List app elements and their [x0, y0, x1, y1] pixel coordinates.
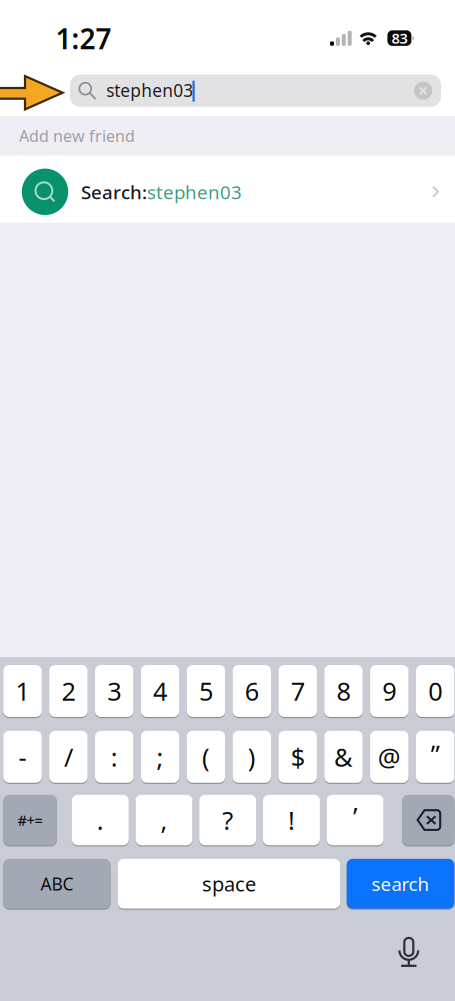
button[interactable]: .: [72, 795, 129, 845]
button[interactable]: ?: [199, 795, 256, 845]
staticText: 5: [199, 674, 213, 708]
staticText: 9: [382, 674, 396, 708]
button[interactable]: Dictate: [391, 929, 426, 975]
button[interactable]: 9: [370, 665, 409, 717]
button[interactable]: ”: [416, 731, 454, 783]
staticText: ): [248, 740, 256, 774]
staticText: 1:27: [55, 20, 111, 57]
button[interactable]: space: [118, 859, 340, 909]
staticText: /: [64, 740, 73, 774]
staticText: 7: [291, 674, 305, 708]
button[interactable]: 5: [187, 665, 225, 717]
button[interactable]: -: [3, 731, 42, 783]
button[interactable]: 7: [278, 665, 317, 717]
button[interactable]: @: [370, 731, 409, 783]
button[interactable]: 0: [416, 665, 454, 717]
staticText: @: [378, 740, 401, 774]
button[interactable]: ABC: [3, 859, 111, 909]
staticText: ;: [157, 740, 164, 774]
staticText: Search:: [81, 180, 147, 204]
staticText: &: [334, 740, 353, 774]
staticText: 2: [61, 674, 75, 708]
staticText: space: [202, 870, 256, 897]
button[interactable]: $: [278, 731, 317, 783]
button[interactable]: (: [187, 731, 225, 783]
button[interactable]: Delete: [402, 795, 454, 845]
button[interactable]: !: [263, 795, 320, 845]
staticText: 8: [336, 674, 350, 708]
staticText: stephen03: [106, 79, 193, 102]
staticText: 0: [428, 674, 442, 708]
button[interactable]: ,: [135, 795, 192, 845]
button[interactable]: 6: [233, 665, 271, 717]
button[interactable]: &: [324, 731, 363, 783]
button[interactable]: Search:: [0, 156, 455, 223]
staticText: search: [372, 871, 430, 896]
staticText: ABC: [40, 872, 73, 895]
button[interactable]: :: [95, 731, 133, 783]
staticText: $: [291, 740, 305, 774]
button[interactable]: stephen03: [70, 75, 441, 107]
button[interactable]: 8: [324, 665, 363, 717]
staticText: :: [111, 740, 118, 774]
button[interactable]: ): [233, 731, 271, 783]
staticText: !: [288, 803, 295, 837]
staticText: ”: [431, 737, 440, 771]
staticText: -: [19, 740, 27, 774]
button[interactable]: Clear text: [410, 75, 437, 107]
button[interactable]: 1: [3, 665, 42, 717]
button[interactable]: #+=: [3, 795, 57, 845]
button[interactable]: 3: [95, 665, 133, 717]
staticText: (: [202, 740, 210, 774]
staticText: 83: [391, 28, 407, 48]
staticText: ,: [160, 803, 167, 837]
button[interactable]: ’: [327, 795, 384, 845]
staticText: ?: [222, 803, 233, 837]
button[interactable]: /: [49, 731, 88, 783]
staticText: 1: [16, 674, 30, 708]
button[interactable]: 2: [49, 665, 88, 717]
staticText: #+=: [18, 810, 43, 830]
staticText: .: [97, 803, 104, 837]
staticText: 4: [153, 674, 167, 708]
button[interactable]: ;: [141, 731, 179, 783]
button[interactable]: search: [347, 859, 454, 909]
staticText: 3: [107, 674, 121, 708]
button[interactable]: 4: [141, 665, 179, 717]
staticText: stephen03: [147, 180, 242, 204]
staticText: Add new friend: [19, 125, 135, 146]
staticText: ’: [353, 799, 357, 833]
staticText: 6: [245, 674, 259, 708]
